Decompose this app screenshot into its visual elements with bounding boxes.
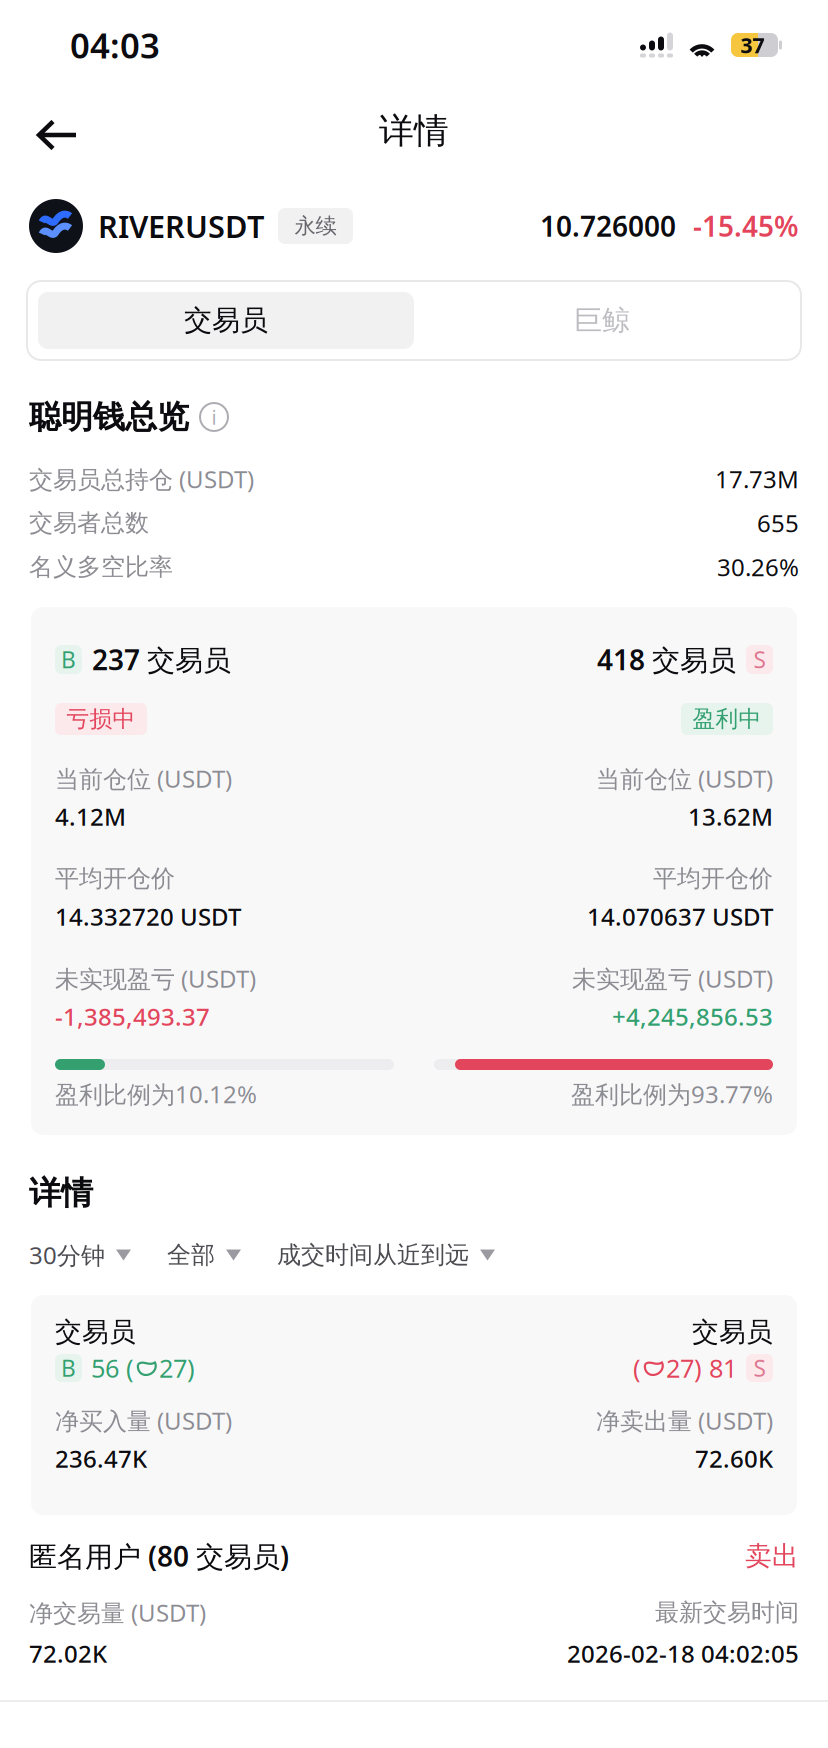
- staticText: 交易员: [55, 1316, 136, 1348]
- staticText: 平均开仓价: [653, 864, 773, 893]
- staticText: 13.62M: [688, 801, 773, 832]
- staticText: 37: [740, 31, 764, 59]
- staticText: 聪明钱总览: [29, 397, 189, 437]
- staticText: -1,385,493.37: [55, 1001, 210, 1032]
- staticText: 30分钟: [29, 1239, 105, 1271]
- staticText: 418 交易员: [597, 641, 736, 678]
- staticText: 平均开仓价: [55, 864, 175, 893]
- button[interactable]: 成交时间从近到远: [277, 1240, 495, 1270]
- staticText: 17.73M: [715, 463, 799, 495]
- staticText: 最新交易时间: [655, 1598, 799, 1627]
- staticText: 亏损中: [66, 705, 135, 733]
- staticText: 未实现盈亏 (USDT): [572, 963, 773, 994]
- staticText: 净买入量 (USDT): [55, 1405, 232, 1436]
- staticText: 237 交易员: [92, 641, 231, 678]
- button[interactable]: 巨鲸: [414, 292, 790, 349]
- staticText: 4.12M: [55, 801, 126, 832]
- button[interactable]: 卖出: [745, 1540, 799, 1572]
- staticText: 当前仓位 (USDT): [596, 763, 773, 794]
- staticText: 净交易量 (USDT): [29, 1597, 206, 1628]
- button[interactable]: Back: [20, 98, 92, 171]
- staticText: B: [61, 1353, 76, 1383]
- staticText: 巨鲸: [574, 303, 630, 338]
- button[interactable]: 交易员: [38, 292, 414, 349]
- staticText: S: [753, 644, 765, 674]
- staticText: 交易者总数: [29, 508, 149, 538]
- staticText: 匿名用户 (80 交易员): [29, 1537, 289, 1575]
- staticText: 详情: [29, 1173, 93, 1213]
- button[interactable]: 全部: [167, 1240, 241, 1270]
- staticText: 名义多空比率: [29, 552, 173, 582]
- staticText: 655: [757, 507, 799, 539]
- staticText: 236.47K: [55, 1443, 147, 1474]
- staticText: -15.45%: [693, 207, 799, 245]
- staticText: 72.60K: [695, 1443, 773, 1474]
- staticText: 10.726000: [540, 207, 676, 245]
- staticText: 详情: [379, 110, 449, 152]
- staticText: 30.26%: [717, 551, 799, 583]
- staticText: 盈利比例为10.12%: [55, 1078, 257, 1110]
- staticText: 全部: [167, 1240, 215, 1270]
- staticText: +4,245,856.53: [612, 1001, 773, 1032]
- staticText: 2026-02-18 04:02:05: [567, 1638, 799, 1669]
- staticText: 72.02K: [29, 1638, 107, 1669]
- staticText: 卖出: [745, 1540, 799, 1572]
- staticText: 盈利比例为93.77%: [571, 1078, 773, 1110]
- staticText: 未实现盈亏 (USDT): [55, 963, 256, 994]
- staticText: 04:03: [70, 22, 160, 68]
- staticText: 净卖出量 (USDT): [596, 1405, 773, 1436]
- staticText: 56 (: [91, 1351, 134, 1385]
- staticText: 27): [159, 1351, 195, 1385]
- button[interactable]: 30分钟: [29, 1239, 131, 1271]
- staticText: i: [211, 404, 216, 430]
- staticText: S: [753, 1353, 765, 1383]
- staticText: 盈利中: [692, 705, 761, 733]
- staticText: 交易员总持仓 (USDT): [29, 463, 254, 495]
- staticText: 27) 81: [666, 1351, 737, 1385]
- staticText: B: [61, 644, 76, 674]
- staticText: 交易员: [184, 303, 268, 338]
- staticText: 永续: [294, 213, 336, 239]
- staticText: 14.070637 USDT: [587, 901, 773, 932]
- staticText: RIVERUSDT: [98, 206, 264, 246]
- staticText: 14.332720 USDT: [55, 901, 241, 932]
- staticText: 交易员: [692, 1316, 773, 1348]
- staticText: (: [633, 1351, 641, 1385]
- staticText: 当前仓位 (USDT): [55, 763, 232, 794]
- staticText: 成交时间从近到远: [277, 1240, 469, 1270]
